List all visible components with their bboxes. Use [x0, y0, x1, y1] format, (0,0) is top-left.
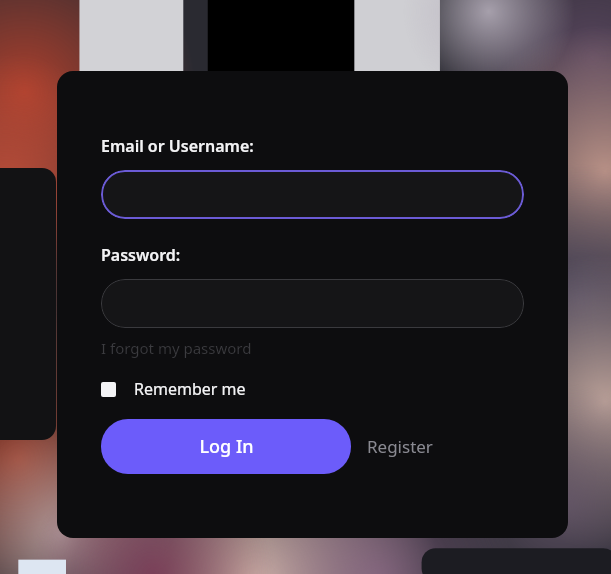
staticText: Remember me	[134, 378, 246, 400]
staticText: Log In	[199, 434, 254, 459]
button[interactable]: Remember me	[101, 378, 246, 400]
button[interactable]: I forgot my password	[101, 338, 252, 358]
staticText: I forgot my password	[101, 338, 252, 358]
button[interactable]: Register	[367, 419, 433, 474]
staticText: Password:	[101, 244, 181, 266]
staticText: Register	[367, 435, 433, 458]
staticText: Email or Username:	[101, 135, 254, 157]
button[interactable]: Password field	[101, 279, 524, 328]
button[interactable]: Email or Username field	[101, 170, 524, 219]
button[interactable]: Log In	[101, 419, 351, 474]
